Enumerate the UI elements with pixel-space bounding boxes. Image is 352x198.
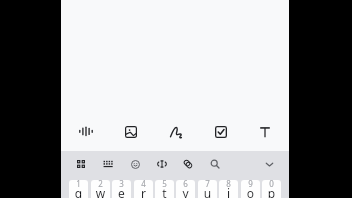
- staticText: 0: [262, 180, 281, 189]
- button[interactable]: 7: [198, 180, 217, 198]
- button[interactable]: 6: [176, 180, 195, 198]
- button[interactable]: Search: [202, 151, 228, 177]
- staticText: 7: [198, 180, 217, 189]
- button[interactable]: 3: [112, 180, 131, 198]
- staticText: 5: [155, 180, 174, 189]
- button[interactable]: Select text: [149, 151, 175, 177]
- staticText: i: [219, 185, 238, 198]
- staticText: 3: [112, 180, 131, 189]
- button[interactable]: Clipboard: [175, 151, 201, 177]
- staticText: 6: [176, 180, 195, 189]
- staticText: 9: [241, 180, 260, 189]
- staticText: 8: [219, 180, 238, 189]
- staticText: u: [198, 185, 217, 198]
- button[interactable]: Text formatting: [246, 113, 284, 151]
- button[interactable]: Insert image: [112, 113, 150, 151]
- staticText: t: [155, 185, 174, 198]
- staticText: 2: [91, 180, 110, 189]
- button[interactable]: Checklist: [202, 113, 240, 151]
- button[interactable]: Keyboard layout: [95, 151, 121, 177]
- button[interactable]: 0: [262, 180, 281, 198]
- button[interactable]: 8: [219, 180, 238, 198]
- staticText: p: [262, 185, 281, 198]
- button[interactable]: 4: [134, 180, 153, 198]
- button[interactable]: Apps: [68, 151, 94, 177]
- button[interactable]: Voice recording: [67, 113, 105, 151]
- button[interactable]: Emoji: [122, 151, 148, 177]
- button[interactable]: 2: [91, 180, 110, 198]
- staticText: o: [241, 185, 260, 198]
- staticText: 4: [134, 180, 153, 189]
- staticText: w: [91, 185, 110, 198]
- button[interactable]: Handwriting: [157, 113, 195, 151]
- button[interactable]: 5: [155, 180, 174, 198]
- button[interactable]: 1: [69, 180, 88, 198]
- button[interactable]: Collapse keyboard: [256, 151, 282, 177]
- staticText: q: [69, 185, 88, 198]
- staticText: r: [134, 185, 153, 198]
- staticText: 1: [69, 180, 88, 189]
- staticText: y: [176, 185, 195, 198]
- button[interactable]: 9: [241, 180, 260, 198]
- staticText: e: [112, 185, 131, 198]
